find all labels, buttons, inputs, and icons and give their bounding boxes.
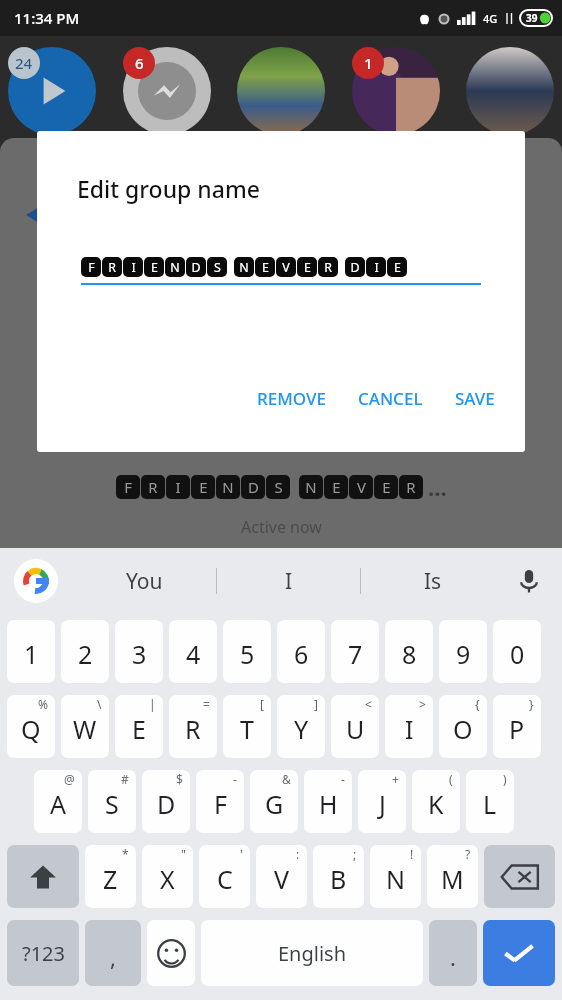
button[interactable]: F bbox=[196, 770, 244, 833]
button[interactable]: V bbox=[256, 845, 307, 908]
button[interactable]: L bbox=[466, 770, 514, 833]
button[interactable]: 9 bbox=[439, 620, 487, 683]
staticText: K bbox=[428, 787, 444, 821]
button[interactable]: N bbox=[370, 845, 421, 908]
button[interactable]: B bbox=[313, 845, 364, 908]
button[interactable]: CANCEL bbox=[350, 379, 431, 418]
button[interactable]: Is bbox=[361, 548, 504, 614]
staticText: REMOVE bbox=[257, 387, 326, 410]
staticText: Is bbox=[424, 567, 442, 596]
staticText: E bbox=[262, 259, 269, 276]
button[interactable]: REMOVE bbox=[249, 379, 334, 418]
button[interactable]: E bbox=[115, 695, 163, 758]
button[interactable]: U bbox=[331, 695, 379, 758]
button[interactable]: Voice input bbox=[512, 564, 546, 598]
staticText: R bbox=[148, 477, 158, 497]
staticText: + bbox=[392, 771, 399, 787]
staticText: W bbox=[73, 712, 97, 746]
staticText: N bbox=[239, 259, 249, 276]
staticText: E bbox=[382, 477, 391, 497]
button[interactable]: I bbox=[385, 695, 433, 758]
staticText: < bbox=[365, 696, 372, 712]
button[interactable]: Emoji bbox=[147, 920, 195, 986]
button[interactable]: Enter bbox=[483, 920, 555, 986]
staticText: E bbox=[132, 712, 146, 746]
button[interactable]: . bbox=[429, 920, 477, 986]
button[interactable]: ?123 bbox=[7, 920, 79, 986]
button[interactable]: A bbox=[34, 770, 82, 833]
staticText: # bbox=[121, 771, 129, 787]
button[interactable]: , bbox=[85, 920, 141, 986]
staticText: J bbox=[379, 787, 386, 821]
staticText: E bbox=[332, 477, 341, 497]
button[interactable]: Backspace bbox=[484, 845, 555, 908]
button[interactable]: 4 bbox=[169, 620, 217, 683]
button[interactable]: S bbox=[88, 770, 136, 833]
button[interactable]: 7 bbox=[331, 620, 379, 683]
button[interactable]: 8 bbox=[385, 620, 433, 683]
button[interactable]: C bbox=[199, 845, 250, 908]
staticText: ? bbox=[465, 846, 471, 862]
staticText: S bbox=[105, 787, 119, 821]
staticText: N bbox=[386, 862, 406, 896]
button[interactable]: G bbox=[250, 770, 298, 833]
staticText: 7 bbox=[348, 637, 363, 671]
button[interactable]: SAVE bbox=[447, 379, 503, 418]
button[interactable]: English bbox=[201, 920, 423, 986]
staticText: 4G bbox=[483, 11, 498, 26]
staticText: I bbox=[285, 567, 293, 596]
staticText: 11:34 PM bbox=[14, 8, 80, 28]
button[interactable]: Shift bbox=[7, 845, 79, 908]
button[interactable]: Google bbox=[14, 559, 58, 603]
staticText: * bbox=[122, 846, 129, 862]
button[interactable]: R bbox=[169, 695, 217, 758]
staticText: ; bbox=[353, 846, 357, 862]
button[interactable]: Q bbox=[7, 695, 55, 758]
button[interactable]: J bbox=[358, 770, 406, 833]
staticText: SAVE bbox=[455, 387, 495, 410]
staticText: V bbox=[282, 259, 290, 276]
button[interactable]: 6 bbox=[277, 620, 325, 683]
staticText: 0 bbox=[510, 637, 525, 671]
button[interactable]: 2 bbox=[61, 620, 109, 683]
staticText: I bbox=[175, 477, 181, 497]
button[interactable]: W bbox=[61, 695, 109, 758]
button[interactable]: I bbox=[217, 548, 360, 614]
button[interactable]: O bbox=[439, 695, 487, 758]
staticText: E bbox=[199, 477, 208, 497]
button[interactable]: 1 bbox=[7, 620, 55, 683]
staticText: ' bbox=[240, 846, 243, 862]
button[interactable]: Z bbox=[85, 845, 136, 908]
staticText: $ bbox=[176, 771, 183, 787]
button[interactable]: 0 bbox=[493, 620, 541, 683]
button[interactable]: D bbox=[142, 770, 190, 833]
staticText: I bbox=[374, 259, 379, 276]
button[interactable]: H bbox=[304, 770, 352, 833]
staticText: 6 bbox=[294, 637, 309, 671]
staticText: Z bbox=[103, 862, 118, 896]
staticText: V bbox=[274, 862, 290, 896]
button[interactable]: You bbox=[72, 548, 216, 614]
button[interactable]: 3 bbox=[115, 620, 163, 683]
staticText: Active now bbox=[241, 516, 322, 538]
staticText: 8 bbox=[402, 637, 417, 671]
staticText: " bbox=[181, 846, 186, 862]
button[interactable]: T bbox=[223, 695, 271, 758]
button[interactable]: Y bbox=[277, 695, 325, 758]
staticText: = bbox=[203, 696, 210, 712]
staticText: N bbox=[305, 477, 317, 497]
staticText: F bbox=[124, 477, 132, 497]
button[interactable]: 5 bbox=[223, 620, 271, 683]
staticText: R bbox=[324, 259, 332, 276]
staticText: U bbox=[346, 712, 365, 746]
button[interactable]: P bbox=[493, 695, 541, 758]
staticText: - bbox=[233, 771, 237, 787]
staticText: 2 bbox=[78, 637, 93, 671]
staticText: X bbox=[160, 862, 175, 896]
button[interactable]: X bbox=[142, 845, 193, 908]
button[interactable]: K bbox=[412, 770, 460, 833]
staticText: Edit group name bbox=[77, 173, 260, 204]
staticText: 5 bbox=[240, 637, 255, 671]
button[interactable]: M bbox=[427, 845, 478, 908]
staticText: G bbox=[265, 787, 284, 821]
